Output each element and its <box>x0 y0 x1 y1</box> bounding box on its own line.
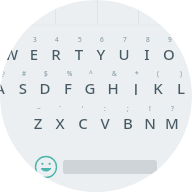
staticText: ^ <box>89 69 101 78</box>
button[interactable]: % <box>57 69 79 95</box>
staticText: L <box>170 78 192 95</box>
button[interactable]: 4 <box>45 35 67 61</box>
button[interactable]: ( <box>147 69 169 95</box>
button[interactable]: 6 <box>90 35 112 61</box>
staticText: D <box>34 78 56 95</box>
staticText: I <box>136 44 158 61</box>
staticText: G <box>79 78 101 95</box>
button[interactable]: ? <box>161 104 183 130</box>
staticText: ~ <box>37 104 49 113</box>
staticText: C <box>72 113 94 130</box>
staticText: 5 <box>78 35 90 44</box>
staticText: M <box>161 113 183 130</box>
button[interactable]: : <box>94 104 116 130</box>
staticText: 8 <box>146 35 158 44</box>
button[interactable]: 2 <box>0 35 22 61</box>
button[interactable]: # <box>12 69 34 95</box>
staticText: 7 <box>123 35 135 44</box>
button[interactable]: ^ <box>79 69 101 95</box>
button[interactable]: * <box>125 69 147 95</box>
staticText: A <box>0 78 11 95</box>
staticText: H <box>102 78 124 95</box>
staticText: ( <box>157 69 169 78</box>
staticText: Y <box>90 44 112 61</box>
staticText: Z <box>27 113 49 130</box>
staticText: J <box>125 78 147 95</box>
staticText: F <box>57 78 79 95</box>
staticText: ? <box>171 104 183 113</box>
staticText: W <box>0 44 22 61</box>
button[interactable]: ; <box>117 104 139 130</box>
staticText: @ <box>0 69 11 78</box>
staticText: E <box>23 44 45 61</box>
button[interactable]: ~ <box>27 104 49 130</box>
button[interactable]: $ <box>34 69 56 95</box>
staticText: 2 <box>10 35 22 44</box>
staticText: V <box>94 113 116 130</box>
staticText: : <box>104 104 116 113</box>
staticText: # <box>22 69 34 78</box>
staticText: 4 <box>55 35 67 44</box>
staticText: ` <box>59 104 71 113</box>
staticText: N <box>139 113 161 130</box>
button[interactable]: Emoji <box>32 153 60 181</box>
button[interactable]: 5 <box>68 35 90 61</box>
button[interactable]: ' <box>72 104 94 130</box>
staticText: O <box>158 44 180 61</box>
staticText: U <box>113 44 135 61</box>
staticText: 3 <box>33 35 45 44</box>
button[interactable]: 7 <box>113 35 135 61</box>
button[interactable]: @ <box>0 69 11 95</box>
staticText: $ <box>44 69 56 78</box>
button[interactable]: ) <box>170 69 192 95</box>
button[interactable]: 3 <box>23 35 45 61</box>
staticText: % <box>67 69 79 78</box>
button[interactable]: 0 <box>180 35 192 61</box>
staticText: ! <box>149 104 161 113</box>
button[interactable]: Space <box>63 160 157 174</box>
staticText: 9 <box>168 35 180 44</box>
staticText: ' <box>82 104 94 113</box>
staticText: X <box>49 113 71 130</box>
staticText: P <box>180 44 192 61</box>
staticText: 6 <box>100 35 112 44</box>
button[interactable]: 9 <box>158 35 180 61</box>
staticText: B <box>117 113 139 130</box>
button[interactable]: ! <box>139 104 161 130</box>
staticText: * <box>135 69 147 78</box>
button[interactable]: & <box>102 69 124 95</box>
staticText: ) <box>180 69 192 78</box>
staticText: R <box>45 44 67 61</box>
staticText: T <box>68 44 90 61</box>
button[interactable]: ` <box>49 104 71 130</box>
button[interactable]: 8 <box>136 35 158 61</box>
staticText: ; <box>127 104 139 113</box>
staticText: & <box>112 69 124 78</box>
staticText: S <box>12 78 34 95</box>
staticText: K <box>147 78 169 95</box>
